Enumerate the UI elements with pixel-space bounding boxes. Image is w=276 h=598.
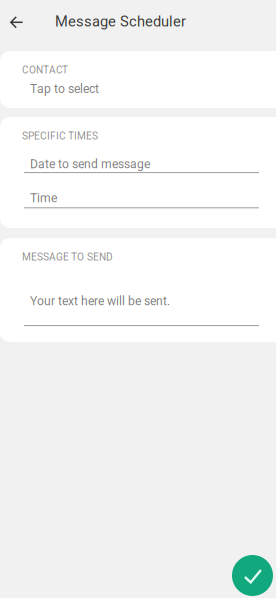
staticText: SPECIFIC TIMES <box>22 130 98 142</box>
button[interactable]: Time <box>22 173 257 208</box>
staticText: CONTACT <box>22 64 68 76</box>
button[interactable]: Tap to select <box>22 82 99 96</box>
button[interactable]: Date to send message <box>22 142 257 173</box>
staticText: Date to send message <box>30 157 150 171</box>
button[interactable]: Confirm <box>232 555 273 596</box>
button[interactable]: Your text here will be sent. <box>22 263 257 326</box>
staticText: Time <box>30 191 57 205</box>
staticText: MESSAGE TO SEND <box>22 251 113 263</box>
button[interactable]: Back <box>0 0 33 51</box>
staticText: Your text here will be sent. <box>30 294 170 308</box>
staticText: Tap to select <box>30 82 99 96</box>
staticText: Message Scheduler <box>55 13 186 30</box>
